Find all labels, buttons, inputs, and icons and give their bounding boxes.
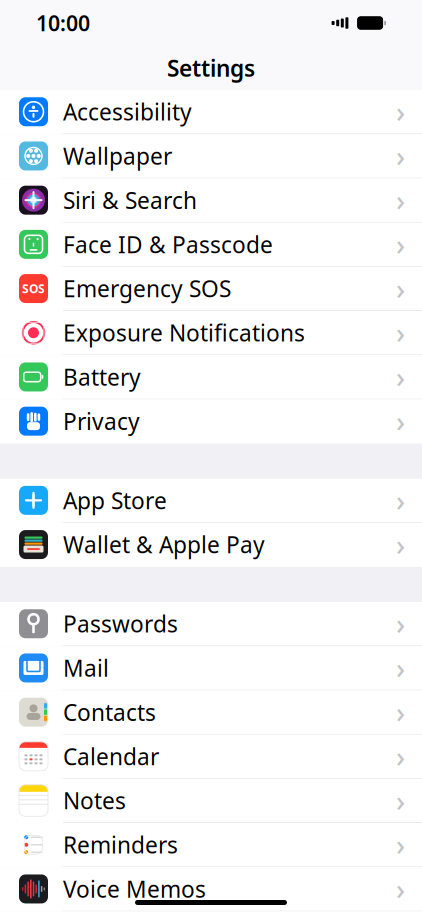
staticText: › xyxy=(396,649,405,687)
staticText: › xyxy=(396,137,405,175)
staticText: › xyxy=(396,93,405,130)
button[interactable]: App Store xyxy=(0,479,422,523)
staticText: › xyxy=(396,314,405,351)
button[interactable]: Battery xyxy=(0,355,422,399)
button[interactable]: SOS xyxy=(0,267,422,311)
staticText: Accessibility xyxy=(63,97,192,127)
staticText: › xyxy=(396,226,405,263)
button[interactable]: Calendar xyxy=(0,735,422,779)
staticText: › xyxy=(396,605,405,642)
staticText: Contacts xyxy=(63,697,156,727)
staticText: Emergency SOS xyxy=(63,273,231,304)
button[interactable]: Reminders xyxy=(0,823,422,867)
staticText: Exposure Notifications xyxy=(63,318,305,348)
button[interactable]: Contacts xyxy=(0,690,422,735)
staticText: › xyxy=(396,182,405,219)
staticText: › xyxy=(396,526,405,563)
staticText: › xyxy=(396,870,405,908)
staticText: › xyxy=(396,358,405,396)
staticText: Notes xyxy=(63,785,126,816)
staticText: › xyxy=(396,694,405,731)
staticText: Siri & Search xyxy=(63,185,197,215)
staticText: › xyxy=(396,403,405,440)
staticText: Settings xyxy=(167,53,255,83)
staticText: Battery xyxy=(63,362,141,392)
staticText: Mail xyxy=(63,653,109,683)
button[interactable]: Notes xyxy=(0,779,422,823)
staticText: App Store xyxy=(63,485,167,515)
staticText: 10:00 xyxy=(36,9,90,37)
staticText: › xyxy=(396,782,405,819)
staticText: › xyxy=(396,738,405,775)
staticText: Reminders xyxy=(63,830,178,860)
button[interactable]: Accessibility xyxy=(0,90,422,134)
button[interactable]: Mail xyxy=(0,646,422,690)
staticText: Face ID & Passcode xyxy=(63,229,273,259)
button[interactable]: Siri & Search xyxy=(0,178,422,223)
staticText: › xyxy=(396,826,405,863)
staticText: Calendar xyxy=(63,741,159,771)
button[interactable]: Wallpaper xyxy=(0,134,422,178)
staticText: › xyxy=(396,482,405,519)
staticText: Wallet & Apple Pay xyxy=(63,529,265,560)
staticText: Privacy xyxy=(63,406,140,436)
staticText: › xyxy=(396,270,405,307)
staticText: Passwords xyxy=(63,609,178,639)
button[interactable]: Privacy xyxy=(0,399,422,444)
staticText: Voice Memos xyxy=(63,874,206,904)
button[interactable]: Passwords xyxy=(0,602,422,646)
button[interactable]: Voice Memos xyxy=(0,867,422,911)
button[interactable]: Exposure Notifications xyxy=(0,311,422,355)
staticText: Wallpaper xyxy=(63,141,172,171)
button[interactable]: Face ID & Passcode xyxy=(0,223,422,267)
button[interactable]: Wallet & Apple Pay xyxy=(0,523,422,567)
staticText: SOS xyxy=(22,281,45,296)
